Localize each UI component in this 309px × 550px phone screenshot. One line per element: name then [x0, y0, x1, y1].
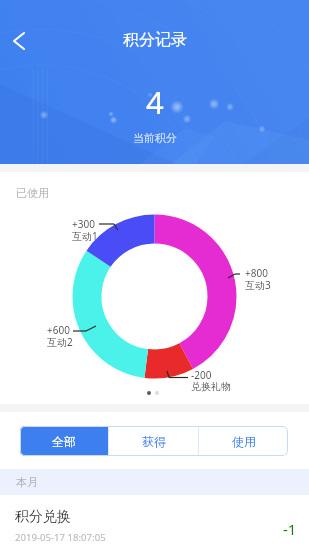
staticText: -200	[191, 368, 212, 382]
staticText: +800	[245, 266, 268, 280]
staticText: 2019-05-17 18:07:05	[15, 531, 106, 544]
staticText: +600	[47, 323, 70, 337]
button[interactable]: 积分兑换	[0, 495, 309, 550]
staticText: 当前积分	[133, 131, 177, 145]
button[interactable]: 获得	[109, 426, 198, 456]
staticText: 全部	[52, 434, 76, 449]
staticText: 互动2	[47, 335, 73, 349]
staticText: 本月	[16, 475, 38, 489]
staticText: +300	[72, 217, 95, 231]
staticText: 互动1	[72, 229, 98, 243]
staticText: -1	[283, 519, 297, 539]
staticText: 使用	[232, 434, 256, 449]
staticText: 获得	[142, 434, 166, 449]
button[interactable]: 全部	[20, 426, 108, 456]
staticText: 积分记录	[123, 30, 187, 50]
button[interactable]: 使用	[199, 426, 288, 456]
staticText: 积分兑换	[15, 508, 71, 526]
staticText: 4	[146, 81, 164, 123]
staticText: 兑换礼物	[191, 380, 231, 393]
staticText: 已使用	[16, 186, 49, 200]
staticText: 互动3	[245, 278, 271, 292]
button[interactable]: Back	[1, 23, 37, 59]
